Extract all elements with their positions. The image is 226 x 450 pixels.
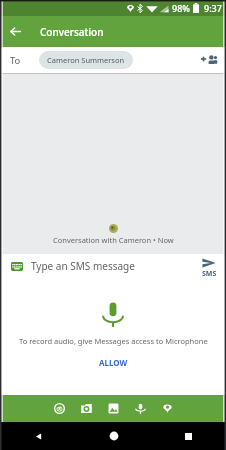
staticText: To bbox=[10, 54, 21, 67]
staticText: Conversation with Cameron • Now bbox=[53, 235, 174, 245]
staticText: Conversation bbox=[40, 25, 104, 39]
staticText: Type an SMS message bbox=[31, 259, 135, 273]
button[interactable]: Back bbox=[0, 16, 31, 47]
button[interactable]: Gallery bbox=[100, 395, 127, 422]
staticText: SMS bbox=[202, 269, 217, 278]
button[interactable]: Add people bbox=[196, 47, 222, 73]
button[interactable]: Microphone bbox=[127, 395, 154, 422]
button[interactable]: Camera bbox=[73, 395, 100, 422]
button[interactable]: Location bbox=[154, 395, 181, 422]
staticText: To record audio, give Messages access to… bbox=[19, 336, 208, 346]
staticText: 98% bbox=[172, 2, 190, 14]
button[interactable]: Send SMS bbox=[192, 254, 226, 278]
button[interactable]: Back bbox=[0, 422, 76, 450]
staticText: 9:37 bbox=[204, 2, 222, 14]
button[interactable]: Emoji bbox=[46, 395, 73, 422]
button[interactable]: ALLOW bbox=[91, 354, 136, 371]
button[interactable]: Recents bbox=[151, 422, 226, 450]
staticText: Cameron Summerson bbox=[47, 55, 125, 65]
button[interactable]: Home bbox=[76, 422, 151, 450]
button[interactable]: Keyboard bbox=[10, 260, 23, 273]
button[interactable]: Cameron Summerson bbox=[39, 51, 133, 69]
staticText: ALLOW bbox=[99, 357, 128, 368]
